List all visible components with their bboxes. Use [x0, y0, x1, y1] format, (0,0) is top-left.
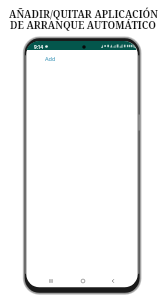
staticText: 9:14 — [34, 44, 44, 50]
staticText: Add — [45, 55, 56, 63]
button[interactable]: Add — [26, 55, 137, 63]
staticText: DE ARRANQUE AUTOMÁTICO — [10, 19, 156, 32]
button[interactable]: Home — [77, 276, 89, 286]
staticText: AÑADIR/QUITAR APLICACIÓN — [9, 8, 158, 21]
button[interactable]: Recents — [45, 276, 57, 286]
button[interactable]: Back — [107, 276, 119, 286]
